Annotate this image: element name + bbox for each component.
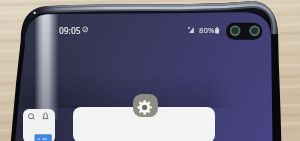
staticText: 80%	[199, 25, 215, 36]
button[interactable]: Settings	[133, 94, 158, 117]
button[interactable]	[23, 109, 55, 141]
button[interactable]	[73, 107, 215, 141]
staticText: 09:05	[59, 25, 81, 36]
